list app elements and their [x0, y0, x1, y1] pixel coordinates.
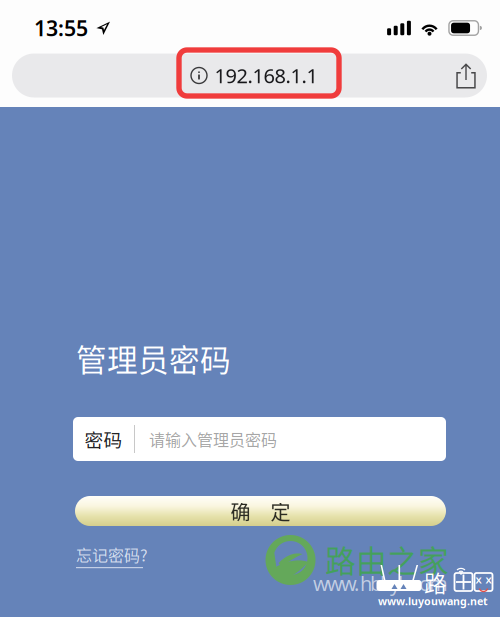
staticText: www.luyouwang.net: [378, 594, 488, 608]
button[interactable]: 忘记密码?: [76, 543, 148, 568]
staticText: 密码: [84, 425, 122, 452]
button[interactable]: Share: [455, 62, 476, 88]
staticText: 忘记密码?: [76, 543, 148, 566]
staticText: 确 定: [230, 496, 290, 525]
staticText: X: [475, 574, 481, 586]
staticText: www. hbbyh.com: [313, 570, 448, 597]
staticText: 13:55: [34, 14, 88, 42]
staticText: 路由之家: [325, 537, 449, 581]
button[interactable]: 确 定: [75, 496, 446, 526]
staticText: 管理员密码: [76, 336, 231, 380]
staticText: X: [485, 574, 491, 586]
button[interactable]: 192.168.1.1: [12, 53, 487, 97]
staticText: 路: [424, 566, 447, 598]
staticText: 192.168.1.1: [214, 62, 317, 89]
staticText: 请输入管理员密码: [149, 427, 277, 451]
